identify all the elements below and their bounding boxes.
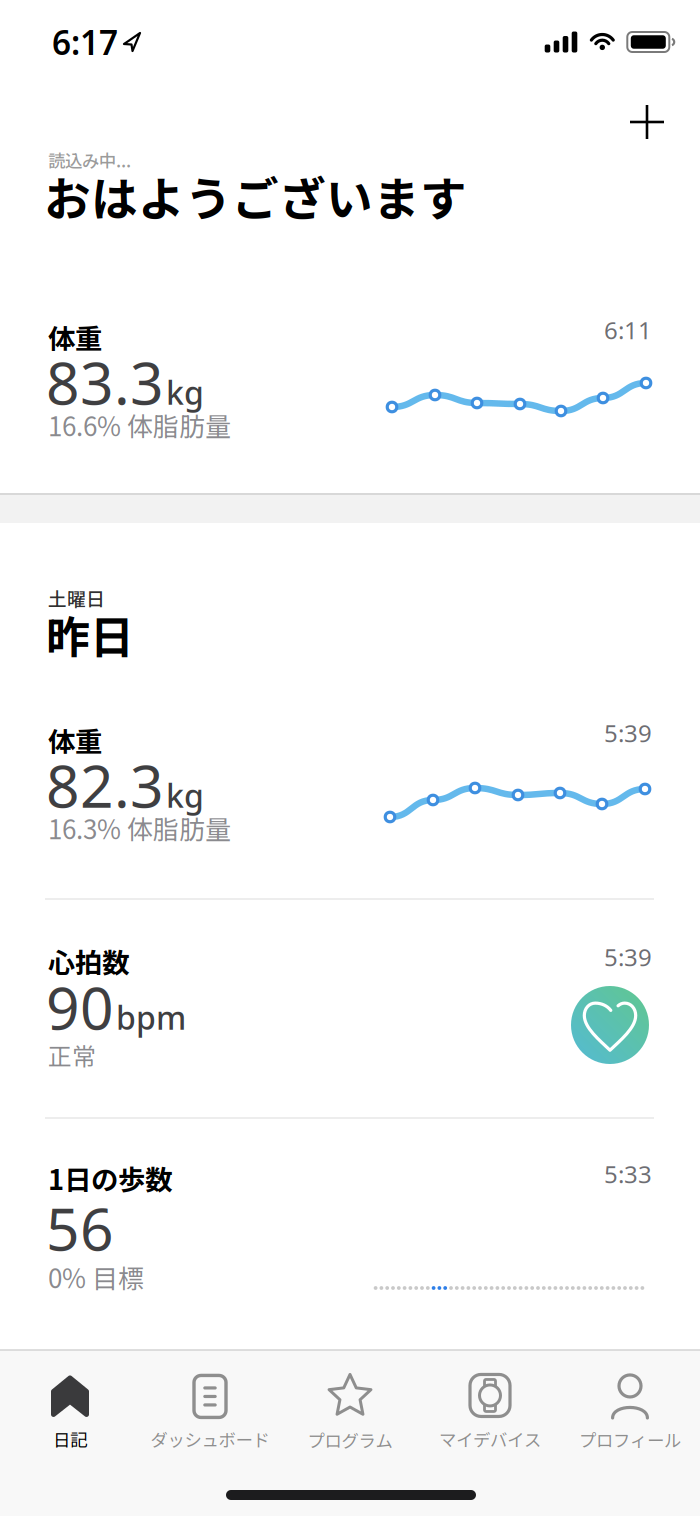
button[interactable]: プログラム	[280, 1373, 420, 1453]
staticText: 読込み中...	[48, 147, 131, 173]
staticText: 0% 目標	[48, 1258, 144, 1296]
staticText: 体重	[48, 720, 102, 760]
button[interactable]: Add measurement	[617, 92, 677, 152]
staticText: 土曜日	[48, 584, 105, 611]
staticText: 6:17	[52, 20, 118, 64]
staticText: 16.3% 体脂肪量	[48, 809, 231, 847]
staticText: 心拍数	[48, 941, 129, 981]
staticText: 56	[46, 1189, 114, 1267]
staticText: 体重	[48, 317, 102, 357]
button[interactable]: 心拍数	[0, 930, 700, 1090]
staticText: 正常	[48, 1038, 96, 1072]
staticText: プロフィール	[579, 1427, 681, 1452]
staticText: 5:39	[604, 941, 652, 973]
button[interactable]: プロフィール	[560, 1374, 700, 1452]
staticText: 82.3	[46, 746, 164, 824]
staticText: マイデバイス	[439, 1426, 541, 1452]
button[interactable]: 体重	[0, 703, 700, 863]
staticText: 日記	[53, 1426, 87, 1452]
staticText: bpm	[116, 996, 186, 1039]
staticText: 5:33	[604, 1158, 652, 1190]
staticText: kg	[166, 371, 204, 414]
staticText: 83.3	[46, 343, 164, 421]
staticText: おはようございます	[44, 162, 467, 230]
staticText: 昨日	[46, 602, 134, 666]
staticText: 16.6% 体脂肪量	[48, 406, 231, 444]
button[interactable]: 体重	[0, 300, 700, 460]
staticText: 90	[46, 968, 114, 1046]
button[interactable]: 日記	[0, 1374, 140, 1452]
button[interactable]: 1日の歩数	[0, 1150, 700, 1310]
staticText: ダッシュボード	[150, 1426, 269, 1452]
staticText: プログラム	[307, 1427, 392, 1453]
staticText: 1日の歩数	[48, 1158, 172, 1198]
staticText: 6:11	[604, 314, 652, 346]
button[interactable]: ダッシュボード	[140, 1374, 280, 1452]
button[interactable]: マイデバイス	[420, 1374, 560, 1452]
staticText: 5:39	[604, 717, 652, 749]
staticText: kg	[166, 774, 204, 817]
